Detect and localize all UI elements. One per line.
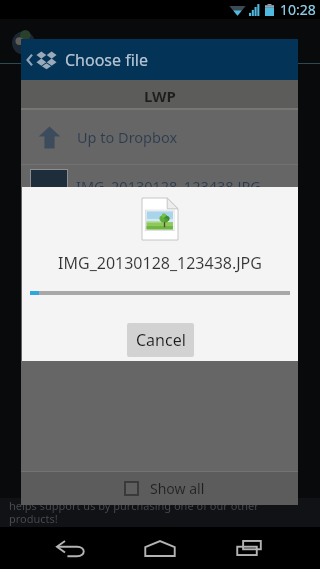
staticText: Cancel (136, 329, 186, 351)
staticText: LWP (144, 86, 176, 106)
staticText: Show all (150, 479, 205, 498)
staticText: helps support us by purchasing one of ou… (9, 498, 259, 513)
button[interactable]: Up to Dropbox (21, 110, 298, 164)
staticText: Choose file (65, 49, 148, 71)
button[interactable]: Choose file (21, 39, 298, 80)
button[interactable]: Show all (21, 472, 298, 505)
button[interactable]: IMG_20130128_123438.JPG (21, 169, 298, 220)
staticText: IMG_20130128_123438.JPG (76, 176, 261, 196)
button[interactable]: Cancel (127, 323, 194, 357)
staticText: IMG_20130128_123438.JPG (22, 252, 298, 274)
button[interactable]: Back (40, 533, 102, 563)
button[interactable]: Recent apps (220, 533, 282, 563)
staticText: Up to Dropbox (77, 127, 178, 147)
button[interactable]: Home (129, 533, 191, 563)
staticText: products! (9, 511, 58, 526)
staticText: 10:28 (280, 0, 316, 19)
